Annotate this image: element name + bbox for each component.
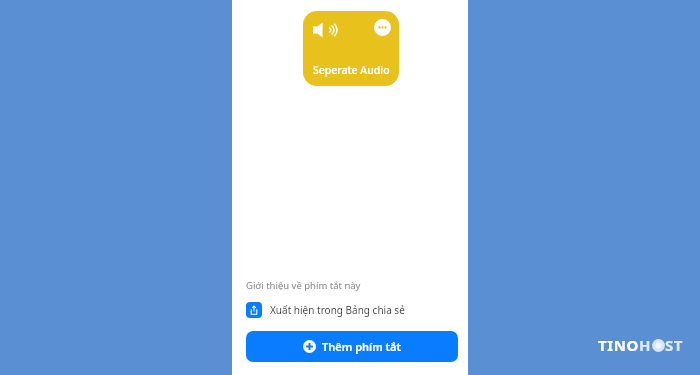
staticText: Thêm phím tắt — [322, 339, 401, 354]
staticText: TINO — [598, 335, 639, 355]
other: Audio — [313, 21, 337, 39]
staticText: Seperate Audio — [313, 63, 390, 77]
button[interactable]: More options — [374, 19, 391, 36]
button[interactable]: Audio — [303, 11, 399, 86]
staticText: ST — [665, 335, 684, 355]
staticText: H — [639, 335, 652, 355]
button[interactable]: Xuất hiện trong Bảng chia sẻ — [246, 300, 458, 320]
staticText: Xuất hiện trong Bảng chia sẻ — [270, 303, 405, 317]
staticText: Giới thiệu về phím tắt này — [246, 279, 361, 292]
button[interactable]: Thêm phím tắt — [246, 331, 458, 362]
